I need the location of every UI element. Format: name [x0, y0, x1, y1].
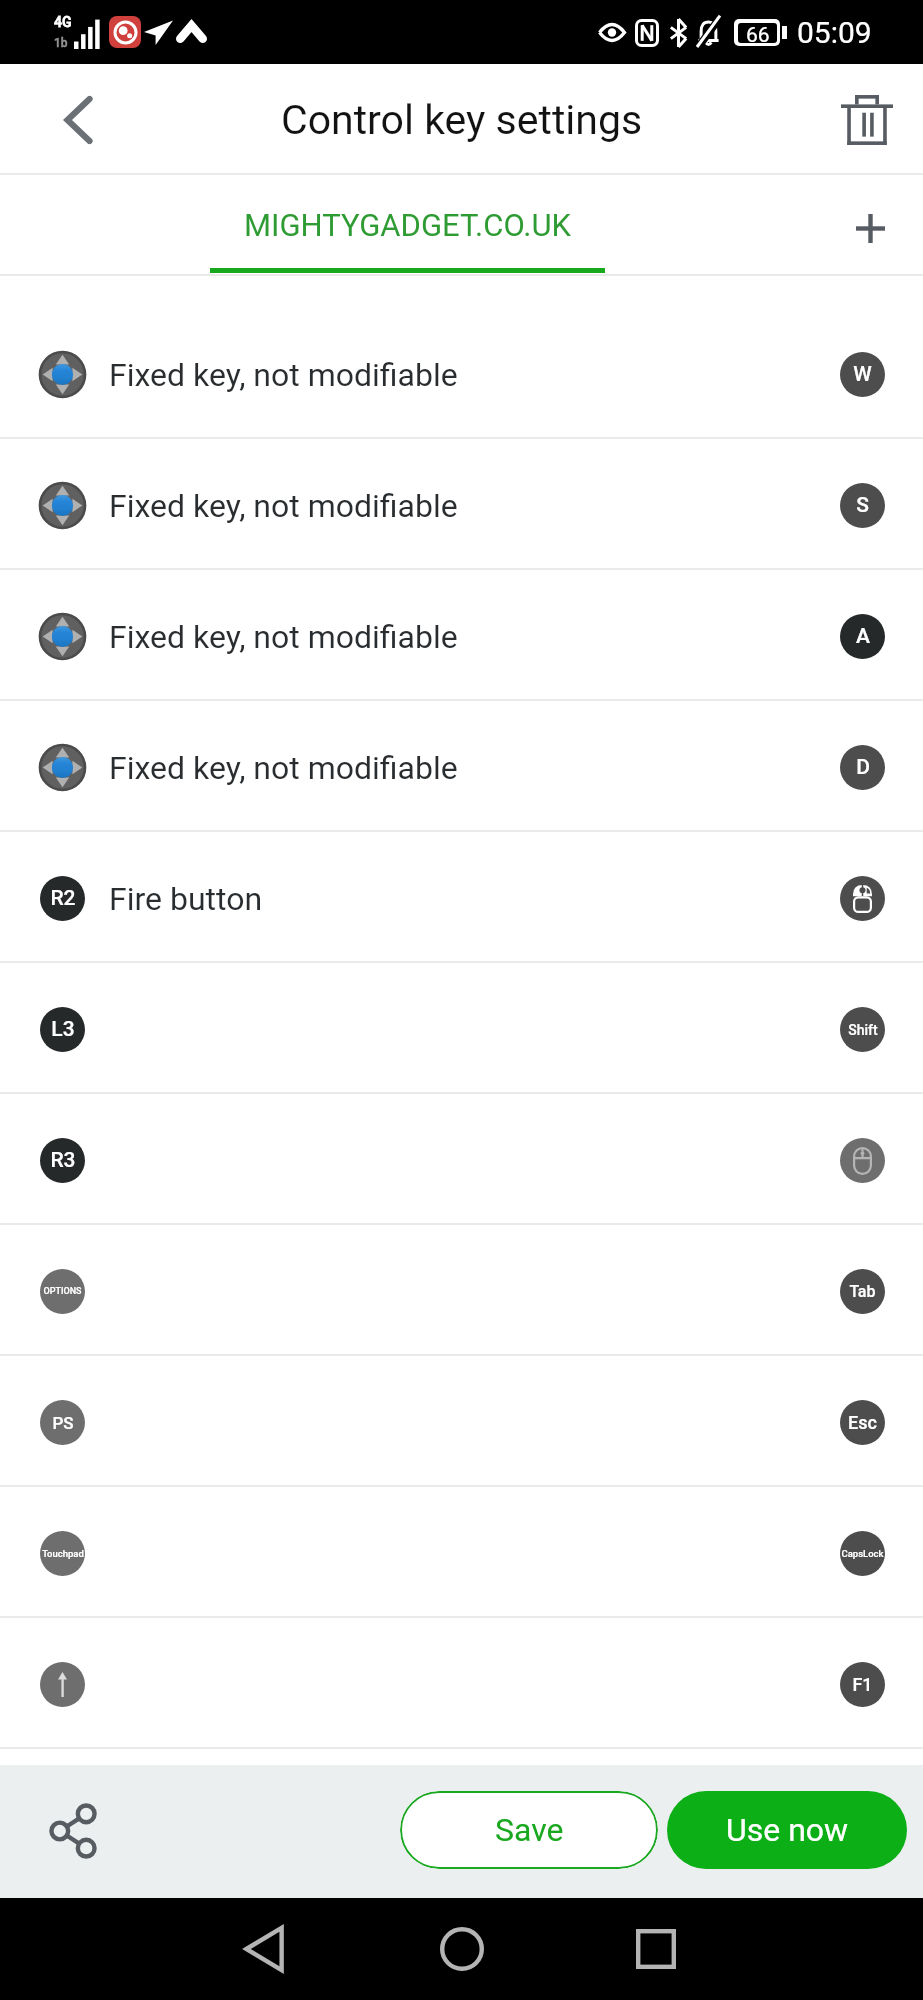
staticText: CapsLock: [841, 1548, 884, 1559]
staticText: 66: [746, 23, 770, 43]
staticText: R3: [50, 1148, 76, 1173]
staticText: A: [856, 624, 870, 649]
staticText: Use now: [726, 1811, 849, 1849]
button[interactable]: Back: [28, 70, 128, 170]
button[interactable]: L3: [0, 963, 923, 1092]
button[interactable]: MIGHTYGADGET.CO.UK: [210, 175, 605, 276]
button[interactable]: Add: [825, 181, 915, 271]
staticText: 4G: [54, 14, 72, 30]
button[interactable]: Fixed key, not modifiable: [0, 570, 923, 699]
staticText: Touchpad: [42, 1548, 84, 1559]
staticText: OPTIONS: [43, 1286, 82, 1297]
button[interactable]: R2: [0, 832, 923, 961]
button[interactable]: Share: [33, 1791, 113, 1871]
button[interactable]: Touchpad: [0, 1487, 923, 1616]
button[interactable]: R3: [0, 1094, 923, 1223]
button[interactable]: PS: [0, 1356, 923, 1485]
staticText: W: [853, 362, 872, 387]
button[interactable]: Fixed key, not modifiable: [0, 308, 923, 437]
staticText: Save: [495, 1811, 564, 1849]
staticText: MIGHTYGADGET.CO.UK: [244, 207, 571, 243]
staticText: Esc: [848, 1412, 877, 1433]
staticText: Shift: [848, 1022, 878, 1038]
staticText: 05:09: [797, 15, 872, 50]
button[interactable]: F1: [0, 1618, 923, 1747]
staticText: Control key settings: [281, 96, 643, 144]
button[interactable]: Delete: [817, 70, 917, 170]
button[interactable]: OPTIONS: [0, 1225, 923, 1354]
staticText: Fixed key, not modifiable: [109, 356, 458, 394]
button[interactable]: Fixed key, not modifiable: [0, 701, 923, 830]
staticText: R2: [50, 886, 76, 911]
button[interactable]: Back: [224, 1909, 304, 1989]
staticText: PS: [52, 1413, 74, 1433]
button[interactable]: Save: [400, 1791, 658, 1869]
staticText: Tab: [849, 1282, 876, 1301]
staticText: L3: [51, 1017, 75, 1042]
button[interactable]: Fixed key, not modifiable: [0, 439, 923, 568]
staticText: F1: [852, 1674, 873, 1695]
button[interactable]: Home: [422, 1909, 502, 1989]
staticText: D: [856, 755, 870, 780]
staticText: 1b: [54, 36, 68, 50]
staticText: Fixed key, not modifiable: [109, 749, 458, 787]
staticText: Fire button: [109, 880, 263, 918]
staticText: Fixed key, not modifiable: [109, 487, 458, 525]
staticText: S: [856, 493, 869, 518]
staticText: Fixed key, not modifiable: [109, 618, 458, 656]
button[interactable]: Use now: [667, 1791, 907, 1869]
button[interactable]: Recents: [616, 1909, 696, 1989]
